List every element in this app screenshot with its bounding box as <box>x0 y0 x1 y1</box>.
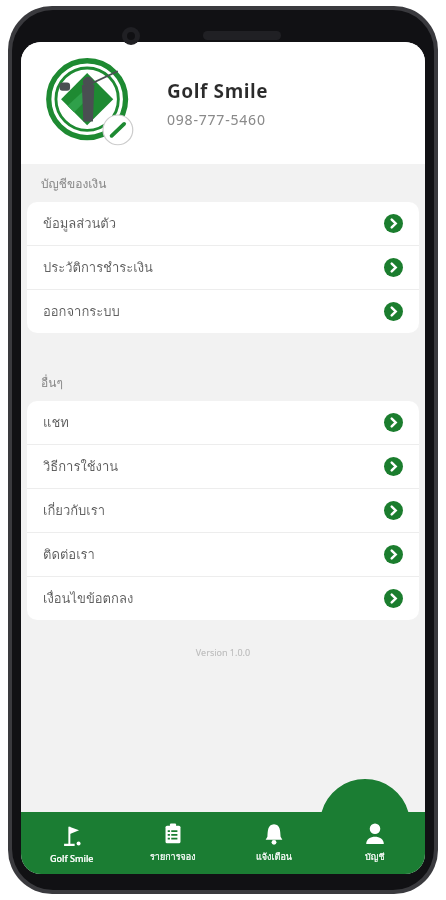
button[interactable]: Golf Smile <box>21 784 122 874</box>
staticText: เงื่อนไขข้อตกลง <box>43 588 134 609</box>
button[interactable]: ติดต่อเรา <box>27 533 419 576</box>
staticText: แชท <box>43 412 69 433</box>
staticText: ข้อมูลส่วนตัว <box>43 213 117 234</box>
staticText: 098-777-5460 <box>167 110 266 129</box>
staticText: วิธีการใช้งาน <box>43 456 119 477</box>
button[interactable]: แชท <box>27 401 419 444</box>
button[interactable]: เกี่ยวกับเรา <box>27 489 419 532</box>
staticText: เกี่ยวกับเรา <box>43 500 106 521</box>
staticText: Golf Smile <box>167 78 269 104</box>
staticText: Golf Smile <box>50 852 94 864</box>
staticText: ออกจากระบบ <box>43 301 120 322</box>
button[interactable]: รายการจอง <box>122 784 223 874</box>
button[interactable]: ข้อมูลส่วนตัว <box>27 202 419 245</box>
button[interactable]: Edit profile photo <box>43 55 139 151</box>
button[interactable]: วิธีการใช้งาน <box>27 445 419 488</box>
button[interactable]: แจ้งเตือน <box>223 784 324 874</box>
staticText: ติดต่อเรา <box>43 544 95 565</box>
button[interactable]: ประวัติการชำระเงิน <box>27 246 419 289</box>
staticText: บัญชี <box>365 850 385 864</box>
staticText: อื่นๆ <box>41 373 63 392</box>
button[interactable]: เงื่อนไขข้อตกลง <box>27 577 419 620</box>
staticText: บัญชีของเงิน <box>41 174 107 193</box>
staticText: ประวัติการชำระเงิน <box>43 257 153 278</box>
staticText: Version 1.0.0 <box>21 646 425 658</box>
staticText: แจ้งเตือน <box>256 850 292 864</box>
button[interactable]: ออกจากระบบ <box>27 290 419 333</box>
button[interactable]: บัญชี <box>324 784 425 874</box>
staticText: รายการจอง <box>150 850 196 864</box>
